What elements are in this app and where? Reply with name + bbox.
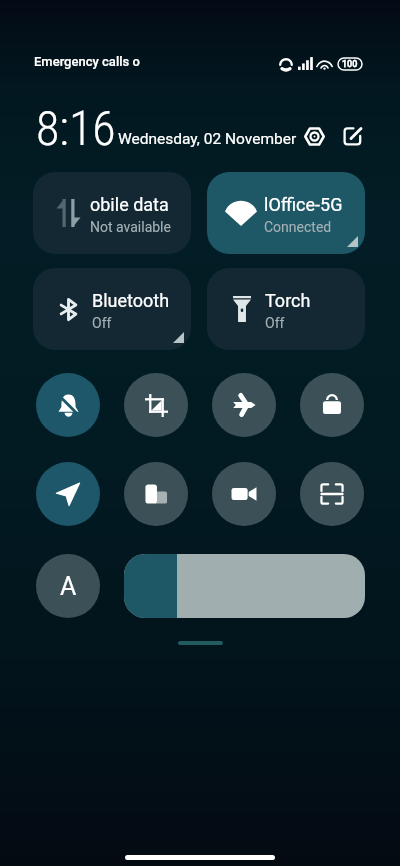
button[interactable]: Cast <box>124 462 188 526</box>
button[interactable]: Edit <box>340 123 366 149</box>
staticText: Not available <box>90 219 171 235</box>
staticText: 8:16 <box>36 100 116 156</box>
staticText: Off <box>92 315 112 331</box>
staticText: obile data <box>90 194 169 215</box>
button[interactable]: Bluetooth <box>33 268 191 350</box>
staticText: A <box>60 572 77 601</box>
button[interactable]: Settings <box>301 123 327 149</box>
staticText: Torch <box>265 290 311 311</box>
button[interactable]: Scanner <box>300 462 364 526</box>
button[interactable]: Do not disturb <box>36 373 100 437</box>
staticText: lOffice-5G <box>264 194 343 215</box>
button[interactable]: Screen record <box>212 462 276 526</box>
staticText: 100 <box>342 59 358 70</box>
button[interactable]: obile data <box>33 172 191 254</box>
staticText: Emergency calls o <box>34 54 140 69</box>
staticText: Bluetooth <box>92 290 170 311</box>
staticText: Wednesday, 02 November <box>118 130 297 148</box>
button[interactable]: Auto brightness <box>36 554 100 618</box>
button[interactable]: Screenshot <box>124 373 188 437</box>
button[interactable]: lOffice-5G <box>207 172 365 254</box>
button[interactable]: Brightness <box>124 554 365 618</box>
button[interactable]: Location <box>36 462 100 526</box>
button[interactable]: Airplane mode <box>212 373 276 437</box>
button[interactable]: Lock <box>300 373 364 437</box>
staticText: Off <box>265 315 285 331</box>
staticText: Connected <box>264 219 332 235</box>
button[interactable]: Torch <box>207 268 365 350</box>
